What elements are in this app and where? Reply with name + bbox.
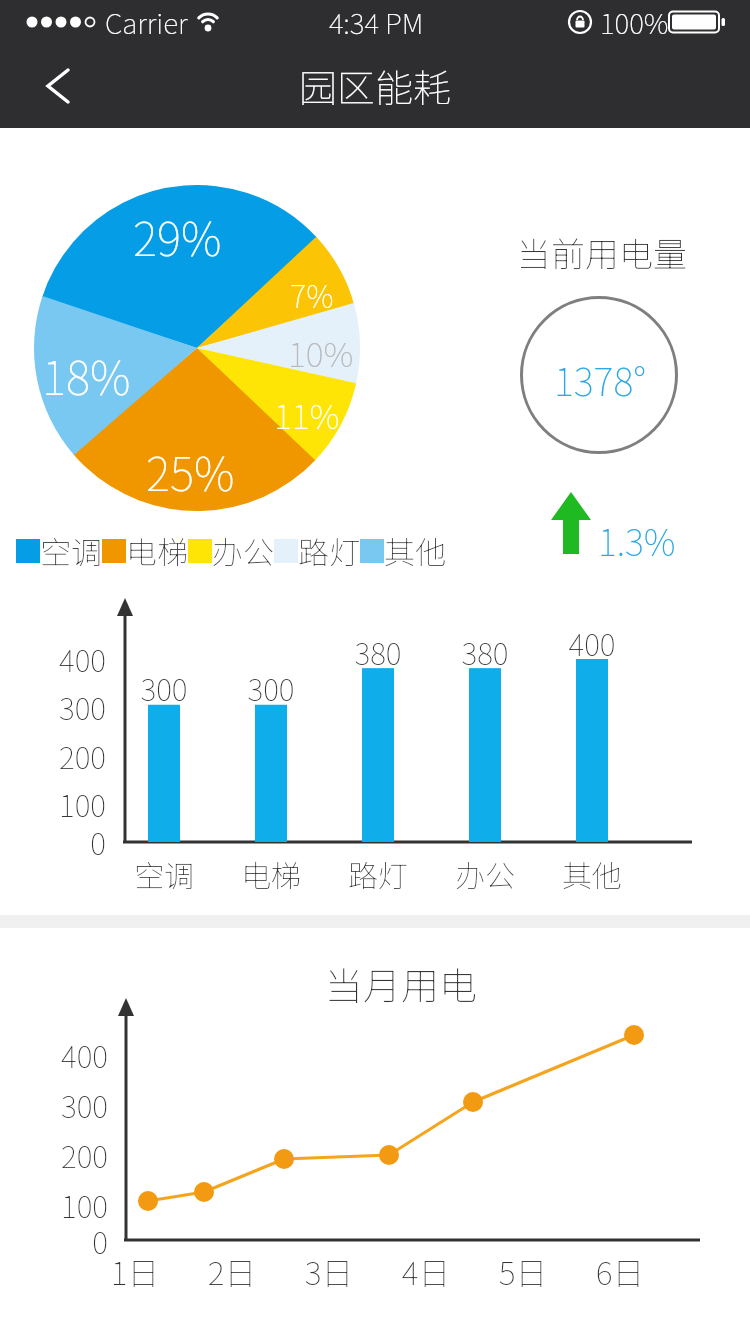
staticText: 400 [42, 1033, 108, 1076]
staticText: 10% [288, 328, 354, 377]
staticText: 6日 [580, 1248, 660, 1294]
staticText: 4:34 PM [321, 2, 431, 43]
staticText: 300 [40, 685, 106, 728]
staticText: 400 [552, 621, 632, 664]
staticText: 200 [40, 734, 106, 777]
staticText: 空调 [40, 528, 102, 573]
staticText: 3日 [289, 1248, 369, 1294]
staticText: 当月用电 [325, 956, 478, 1011]
staticText: 18% [42, 342, 131, 409]
staticText: 5日 [483, 1248, 563, 1294]
staticText: 路灯 [338, 852, 418, 895]
staticText: 29% [133, 203, 222, 270]
staticText: 办公 [212, 528, 274, 573]
staticText: 300 [124, 666, 204, 709]
staticText: 200 [42, 1133, 108, 1176]
staticText: 100% [600, 2, 669, 43]
staticText: 11% [274, 390, 340, 439]
staticText: 100 [42, 1183, 108, 1226]
staticText: Carrier [105, 2, 188, 43]
staticText: 园区能耗 [280, 58, 470, 113]
staticText: 1378° [553, 352, 647, 407]
staticText: 办公 [445, 852, 525, 895]
staticText: 空调 [124, 852, 204, 895]
staticText: 电梯 [126, 528, 188, 573]
staticText: 400 [40, 637, 106, 680]
staticText: 300 [42, 1083, 108, 1126]
staticText: 2日 [192, 1248, 272, 1294]
staticText: 0 [42, 1219, 108, 1262]
staticText: 其他 [552, 852, 632, 895]
staticText: 380 [445, 630, 525, 673]
staticText: 4日 [386, 1248, 466, 1294]
staticText: 7% [290, 272, 334, 317]
staticText: 电梯 [231, 852, 311, 895]
staticText: 其他 [384, 528, 446, 573]
staticText: 1.3% [598, 514, 676, 566]
staticText: 25% [146, 438, 235, 505]
staticText: 100 [40, 782, 106, 825]
staticText: 380 [338, 630, 418, 673]
staticText: 300 [231, 666, 311, 709]
staticText: 0 [40, 820, 106, 863]
staticText: 1日 [95, 1248, 175, 1294]
staticText: 当前用电量 [517, 228, 687, 277]
staticText: 路灯 [298, 528, 360, 573]
button[interactable] [30, 58, 86, 114]
